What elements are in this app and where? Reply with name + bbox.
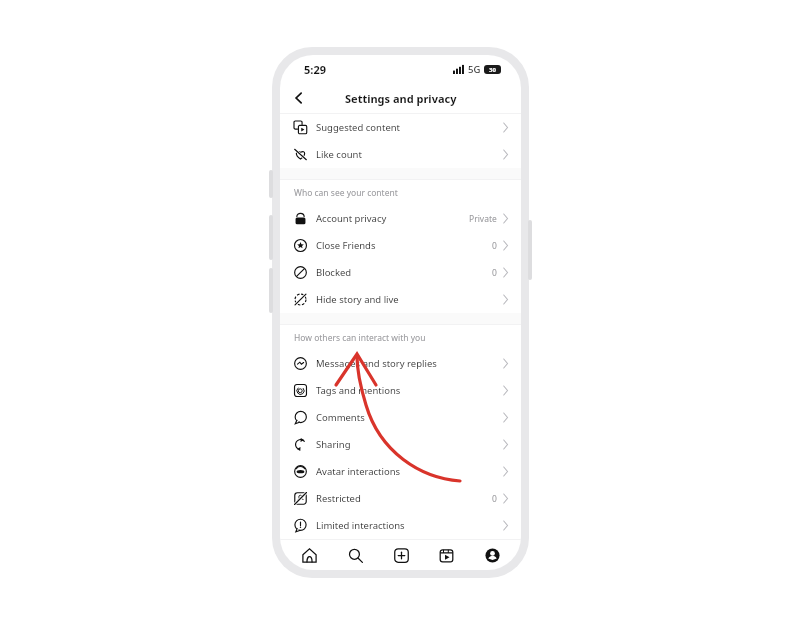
staticText: Tags and mentions xyxy=(316,384,401,397)
staticText: Who can see your content xyxy=(294,187,398,199)
button[interactable]: Restricted xyxy=(280,485,521,512)
button[interactable]: Account privacy xyxy=(280,205,521,232)
button[interactable]: Blocked xyxy=(280,259,521,286)
button[interactable]: Close Friends xyxy=(280,232,521,259)
staticText: Avatar interactions xyxy=(316,465,401,478)
button[interactable]: Home xyxy=(296,542,322,568)
staticText: Restricted xyxy=(316,492,361,505)
staticText: Account privacy xyxy=(316,212,387,225)
staticText: Limited interactions xyxy=(316,519,405,532)
button[interactable]: Like count xyxy=(280,141,521,168)
button[interactable]: Back xyxy=(286,85,312,111)
staticText: Like count xyxy=(316,148,362,161)
staticText: 5:29 xyxy=(304,62,326,77)
staticText: Suggested content xyxy=(316,121,401,134)
button[interactable]: Hide story and live xyxy=(280,286,521,313)
button[interactable]: Reels xyxy=(433,542,459,568)
staticText: Comments xyxy=(316,411,365,424)
button[interactable]: Sharing xyxy=(280,431,521,458)
button[interactable]: Suggested content xyxy=(280,114,521,141)
staticText: 0 xyxy=(492,267,497,279)
staticText: How others can interact with you xyxy=(294,332,426,344)
staticText: Close Friends xyxy=(316,239,376,252)
staticText: Messages and story replies xyxy=(316,357,437,370)
staticText: 0 xyxy=(492,493,497,505)
button[interactable]: Search xyxy=(342,542,368,568)
button[interactable]: Avatar interactions xyxy=(280,458,521,485)
button[interactable]: Tags and mentions xyxy=(280,377,521,404)
button[interactable]: Create xyxy=(388,542,414,568)
button[interactable]: Profile xyxy=(479,542,505,568)
staticText: Private xyxy=(469,213,497,225)
staticText: Blocked xyxy=(316,266,352,279)
button[interactable]: Messages and story replies xyxy=(280,350,521,377)
button[interactable]: Limited interactions xyxy=(280,512,521,539)
button[interactable]: Comments xyxy=(280,404,521,431)
staticText: 5G xyxy=(468,63,481,76)
staticText: Settings and privacy xyxy=(345,91,457,106)
staticText: Hide story and live xyxy=(316,293,399,306)
staticText: Sharing xyxy=(316,438,351,451)
staticText: 30 xyxy=(489,66,496,74)
staticText: 0 xyxy=(492,240,497,252)
